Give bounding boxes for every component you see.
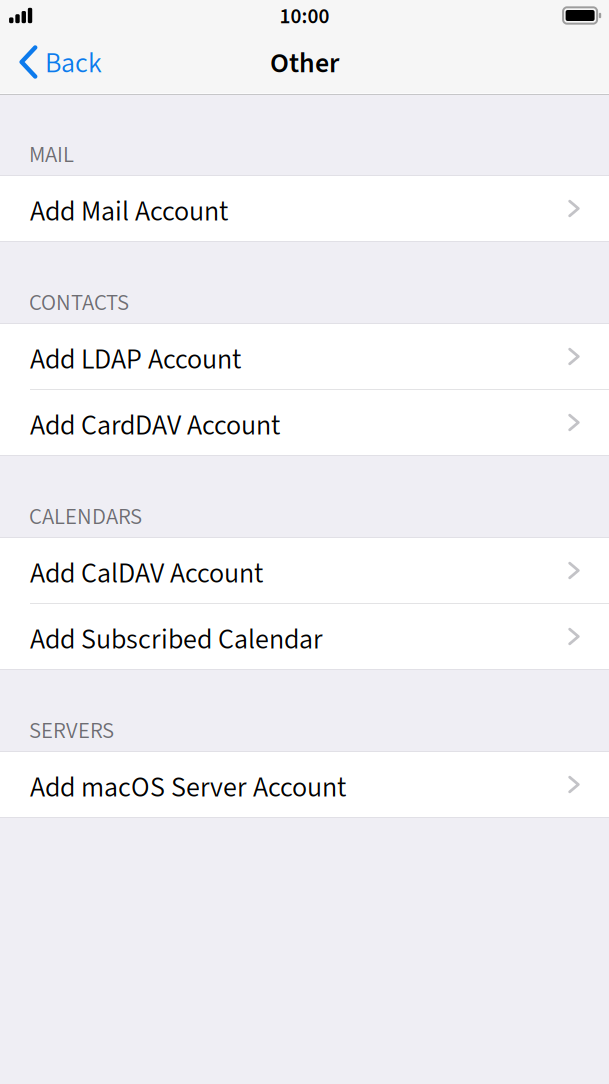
button[interactable]: Add Mail Account (0, 176, 609, 241)
staticText: Other (270, 44, 339, 83)
staticText: Add CardDAV Account (30, 406, 280, 446)
button[interactable]: Add Subscribed Calendar (0, 604, 609, 669)
staticText: 10:00 (279, 1, 329, 32)
staticText: Add LDAP Account (30, 340, 241, 380)
staticText: MAIL (29, 139, 74, 171)
staticText: Add CalDAV Account (30, 554, 263, 594)
staticText: Add Subscribed Calendar (30, 620, 323, 660)
button[interactable]: Add CalDAV Account (0, 538, 609, 603)
staticText: CONTACTS (29, 287, 129, 319)
staticText: Back (45, 44, 102, 83)
button[interactable]: Add CardDAV Account (0, 390, 609, 455)
staticText: SERVERS (29, 715, 114, 747)
button[interactable]: Back (0, 34, 145, 93)
staticText: Add macOS Server Account (30, 768, 346, 808)
button[interactable]: Add LDAP Account (0, 324, 609, 389)
staticText: Add Mail Account (30, 192, 228, 232)
button[interactable]: Add macOS Server Account (0, 752, 609, 817)
staticText: CALENDARS (29, 501, 142, 533)
